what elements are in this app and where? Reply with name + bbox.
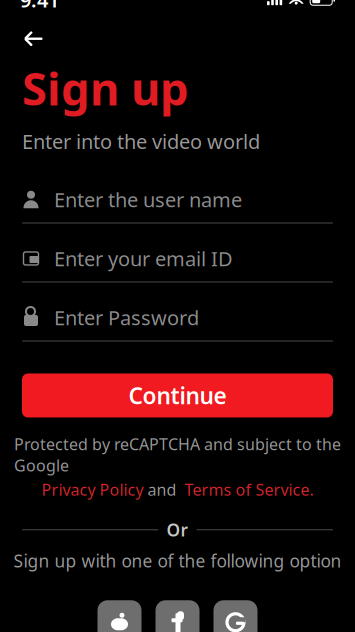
button[interactable]: Privacy Policy [41, 479, 143, 500]
staticText: and [143, 479, 184, 500]
staticText: Terms of Service. [184, 479, 313, 500]
button[interactable]: Back [14, 22, 54, 56]
staticText: Enter your email ID [54, 245, 233, 272]
staticText: 9:41 [20, 0, 59, 13]
button[interactable]: Google [213, 600, 257, 632]
button[interactable]: Apple [97, 600, 141, 632]
button[interactable]: Continue [22, 373, 333, 417]
staticText: Privacy Policy [41, 479, 143, 500]
staticText: Protected by reCAPTCHA and subject to th… [14, 433, 341, 476]
staticText: Enter the user name [54, 186, 242, 213]
button[interactable]: Facebook [155, 600, 199, 632]
staticText: Enter into the video world [22, 128, 260, 154]
staticText: Sign up with one of the following option [13, 549, 341, 572]
staticText: Sign up [22, 58, 189, 118]
button[interactable]: Terms of Service. [184, 479, 313, 500]
staticText: Continue [128, 380, 226, 410]
staticText: Enter Password [54, 304, 199, 331]
staticText: Or [166, 518, 188, 541]
